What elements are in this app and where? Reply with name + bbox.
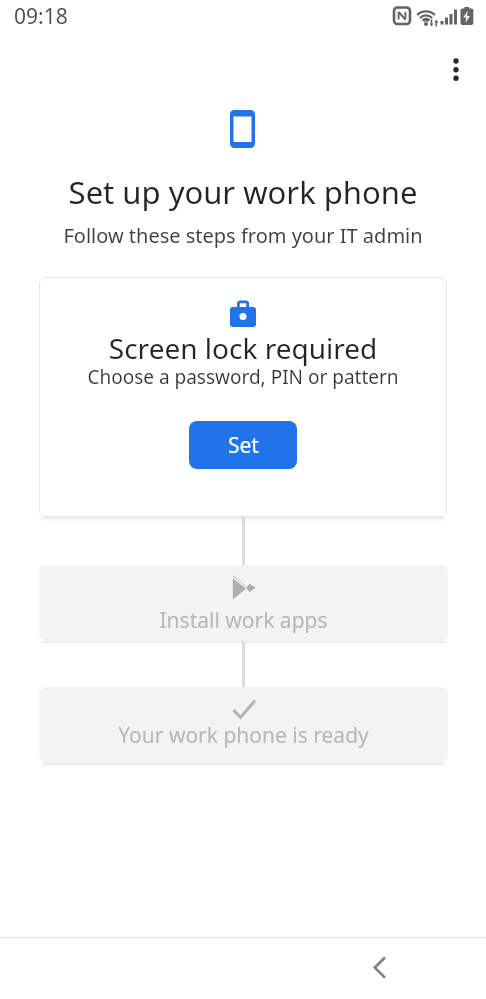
staticText: Choose a password, PIN or pattern [39, 364, 447, 390]
staticText: Set up your work phone [0, 171, 486, 213]
staticText: Set [228, 431, 259, 460]
button[interactable]: Set [189, 421, 297, 469]
staticText: 09:18 [14, 2, 68, 31]
staticText: Your work phone is ready [39, 721, 448, 750]
staticText: Screen lock required [39, 329, 447, 367]
button[interactable]: Install work apps [39, 565, 448, 641]
staticText: Follow these steps from your IT admin [0, 222, 486, 249]
staticText: Install work apps [39, 606, 448, 635]
button[interactable]: Your work phone is ready [39, 687, 448, 763]
button[interactable] [352, 942, 408, 994]
button[interactable] [436, 52, 476, 92]
